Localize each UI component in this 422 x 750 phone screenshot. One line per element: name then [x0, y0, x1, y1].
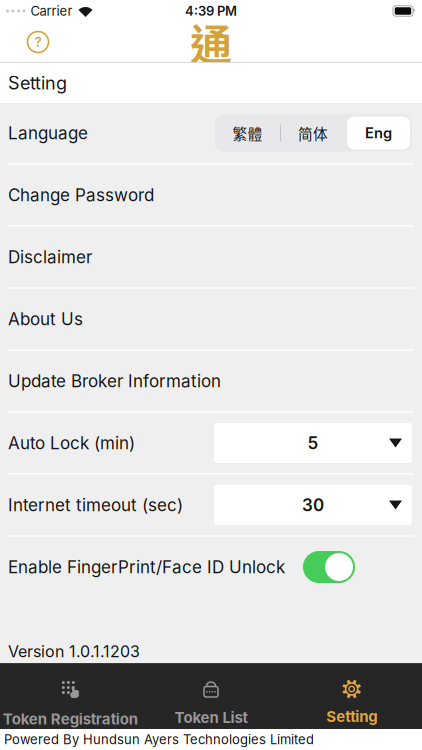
button[interactable]: Token Registration	[0, 664, 141, 728]
staticText: 通	[190, 12, 232, 72]
button[interactable]: Disclaimer	[0, 227, 422, 287]
button[interactable]: Enable FingerPrint/Face ID Unlock	[303, 551, 355, 583]
staticText: 5	[307, 433, 318, 453]
button[interactable]: 5	[214, 423, 412, 463]
staticText: Enable FingerPrint/Face ID Unlock	[8, 557, 285, 577]
button[interactable]: 繁體	[215, 114, 280, 151]
staticText: Auto Lock (min)	[8, 433, 135, 453]
staticText: Carrier	[30, 3, 72, 19]
button[interactable]: Eng	[347, 116, 410, 149]
staticText: 简体	[298, 122, 328, 144]
button[interactable]: 简体	[281, 114, 345, 151]
staticText: 繁體	[232, 122, 262, 144]
button[interactable]: About Us	[0, 289, 422, 349]
staticText: Disclaimer	[8, 247, 92, 267]
button[interactable]: 30	[214, 485, 412, 525]
staticText: About Us	[8, 309, 83, 329]
staticText: 4:39 PM	[185, 3, 237, 19]
button[interactable]: Update Broker Information	[0, 351, 422, 411]
staticText: Setting	[8, 72, 67, 94]
button[interactable]: Token List	[141, 665, 281, 727]
staticText: Token Registration	[3, 710, 138, 728]
staticText: Powered By Hundsun Ayers Technologies Li…	[4, 732, 314, 747]
button[interactable]: Change Password	[0, 165, 422, 225]
staticText: Language	[8, 123, 88, 143]
staticText: 30	[302, 495, 324, 515]
button[interactable]: Setting	[281, 666, 422, 726]
staticText: Setting	[326, 707, 377, 726]
staticText: Internet timeout (sec)	[8, 495, 183, 515]
staticText: Token List	[174, 708, 247, 727]
staticText: Version 1.0.1.1203	[8, 642, 140, 661]
staticText: Eng	[365, 124, 392, 142]
staticText: ?	[34, 34, 41, 50]
button[interactable]: Help	[23, 27, 53, 57]
staticText: Change Password	[8, 185, 154, 205]
staticText: Update Broker Information	[8, 371, 221, 391]
